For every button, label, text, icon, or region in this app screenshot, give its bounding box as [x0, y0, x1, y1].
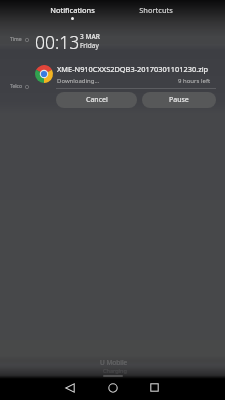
staticText: Cancel	[86, 95, 108, 105]
staticText: Downloading…	[57, 77, 100, 85]
button[interactable]: Pause	[142, 92, 216, 108]
button[interactable]: Shortcuts	[116, 0, 196, 22]
staticText: 00:13	[35, 30, 80, 54]
button[interactable]: Back	[57, 377, 83, 398]
staticText: XME-N910CXXS2DQB3-20170301101230.zip	[57, 64, 209, 74]
button[interactable]: Recents	[141, 377, 167, 398]
button[interactable]: Home	[100, 377, 126, 398]
staticText: Time	[10, 36, 22, 43]
staticText: Telco	[10, 83, 22, 90]
button[interactable]: Notifications	[32, 0, 112, 22]
staticText: Charging	[103, 367, 127, 374]
staticText: Notifications	[50, 5, 95, 15]
staticText: Friday	[80, 41, 99, 50]
staticText: 3 MAR	[80, 32, 100, 41]
staticText: 9 hours left	[178, 77, 211, 85]
staticText: Pause	[169, 95, 189, 105]
staticText: Shortcuts	[139, 5, 173, 15]
button[interactable]: Cancel	[56, 92, 137, 108]
staticText: U Mobile	[100, 358, 128, 367]
